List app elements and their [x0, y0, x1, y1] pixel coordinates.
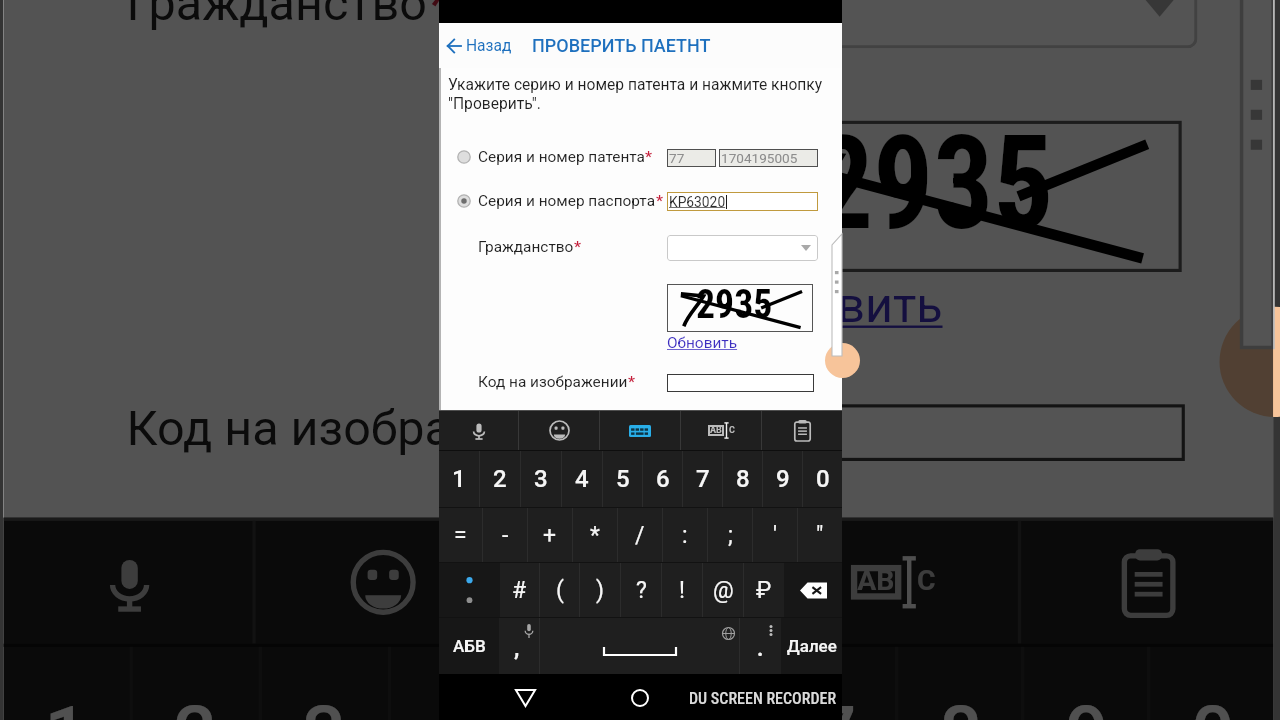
button[interactable]: Код на изображении	[126, 401, 621, 458]
button[interactable]: Код на изображении	[478, 373, 635, 391]
button[interactable]: Emoji	[519, 411, 599, 450]
button[interactable]: ₽	[744, 563, 784, 617]
button[interactable]: 6	[646, 647, 769, 720]
button[interactable]: 4	[562, 451, 602, 507]
button[interactable]: =	[439, 508, 482, 562]
button[interactable]: Код на изображении	[667, 374, 814, 392]
button[interactable]: 2	[480, 451, 520, 507]
staticText: 1704195005	[721, 150, 798, 166]
staticText: -	[502, 522, 509, 549]
button[interactable]: Далее	[781, 618, 842, 674]
button[interactable]: (	[540, 563, 579, 617]
button[interactable]: Voice input	[4, 521, 252, 644]
staticText: 3	[303, 691, 347, 720]
button[interactable]: АБВ	[439, 618, 499, 674]
button[interactable]: Гражданство	[126, 0, 451, 33]
button[interactable]: Select text	[681, 411, 761, 450]
button[interactable]: Обновить	[722, 278, 945, 335]
staticText: /	[635, 522, 645, 549]
staticText: Назад	[466, 37, 512, 55]
button[interactable]: 9	[1024, 647, 1147, 720]
button[interactable]: Keyboard	[511, 521, 763, 644]
staticText: *	[590, 522, 600, 549]
staticText: 4	[575, 465, 589, 493]
button[interactable]: *	[573, 508, 617, 562]
button[interactable]: 7	[683, 451, 722, 507]
button[interactable]: 5	[520, 647, 643, 720]
button[interactable]: 1	[4, 647, 130, 720]
button[interactable]: 3	[521, 451, 561, 507]
button[interactable]: 8	[898, 647, 1021, 720]
staticText: Серия и номер паспорта	[478, 192, 656, 210]
button[interactable]: More symbols	[439, 563, 500, 617]
button[interactable]: Emoji	[256, 521, 508, 644]
button[interactable]: Voice input	[439, 411, 518, 450]
button[interactable]: Серия и номер паспорта	[478, 192, 663, 210]
button[interactable]: @	[703, 563, 743, 617]
button[interactable]: Home	[620, 674, 660, 720]
staticText: '	[773, 522, 778, 549]
button[interactable]: Серия и номер паспорта	[457, 194, 471, 208]
staticText: +	[543, 522, 557, 549]
button[interactable]: 8	[723, 451, 762, 507]
staticText: 2	[493, 465, 507, 493]
button[interactable]: Space	[540, 618, 739, 674]
button[interactable]: 9	[763, 451, 802, 507]
button[interactable]: )	[580, 563, 620, 617]
staticText: 6	[687, 691, 731, 720]
staticText: .	[757, 636, 764, 662]
button[interactable]: Clipboard	[762, 411, 842, 450]
staticText: DU SCREEN RECORDER	[689, 689, 837, 708]
button[interactable]: Гражданство	[722, 0, 1197, 48]
staticText: "	[816, 522, 824, 549]
button[interactable]: '	[753, 508, 797, 562]
button[interactable]: Назад	[439, 29, 518, 63]
button[interactable]: Обновить	[667, 334, 738, 352]
button[interactable]: KP63020	[667, 192, 818, 211]
button[interactable]: -	[483, 508, 527, 562]
staticText: Серия и номер патента	[478, 148, 645, 166]
button[interactable]: ;	[708, 508, 752, 562]
button[interactable]: 5	[603, 451, 642, 507]
button[interactable]: Period	[740, 618, 781, 674]
button[interactable]: "	[798, 508, 842, 562]
button[interactable]: ?	[621, 563, 661, 617]
button[interactable]: Гражданство	[478, 238, 581, 256]
button[interactable]: Код на изображении	[722, 404, 1185, 461]
button[interactable]: Серия и номер патента	[457, 150, 471, 164]
button[interactable]: :	[663, 508, 707, 562]
button[interactable]: Гражданство	[667, 235, 818, 261]
staticText: AB	[857, 565, 895, 600]
staticText: Укажите серию и номер патента и нажмите …	[448, 76, 823, 112]
staticText: *	[574, 238, 581, 256]
button[interactable]: Backspace	[784, 563, 842, 617]
staticText: 0	[816, 465, 830, 493]
button[interactable]: 6	[643, 451, 682, 507]
staticText: C	[917, 565, 936, 600]
staticText: ₽	[756, 577, 772, 604]
button[interactable]: 4	[391, 647, 517, 720]
button[interactable]: Back	[505, 674, 545, 720]
button[interactable]: #	[500, 563, 539, 617]
staticText: 8	[736, 465, 750, 493]
button[interactable]: Keyboard	[600, 411, 680, 450]
button[interactable]: Серия и номер патента	[478, 148, 652, 166]
button[interactable]: 7	[772, 647, 895, 720]
staticText: *	[599, 401, 621, 458]
button[interactable]: 0	[1150, 647, 1273, 720]
button[interactable]: +	[528, 508, 572, 562]
button[interactable]: 0	[803, 451, 842, 507]
button[interactable]: 3	[262, 647, 388, 720]
staticText: *	[628, 373, 635, 391]
button[interactable]: /	[618, 508, 662, 562]
staticText: *	[656, 192, 663, 210]
button[interactable]: Select text	[766, 521, 1018, 644]
button[interactable]: 1	[439, 451, 479, 507]
button[interactable]: 2	[133, 647, 259, 720]
button[interactable]: Comma	[499, 618, 539, 674]
staticText: ?	[636, 577, 647, 604]
button[interactable]: !	[662, 563, 702, 617]
staticText: C	[729, 425, 735, 436]
button[interactable]: Clipboard	[1021, 521, 1273, 644]
